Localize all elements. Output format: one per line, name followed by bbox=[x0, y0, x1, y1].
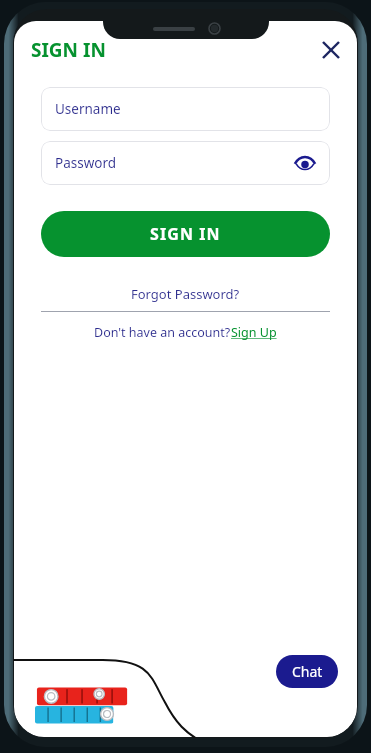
button[interactable]: Forgot Password? bbox=[41, 285, 330, 303]
staticText: Chat bbox=[292, 662, 323, 681]
button[interactable]: Close bbox=[314, 33, 348, 67]
staticText: Don't have an account? bbox=[94, 324, 231, 341]
staticText: Forgot Password? bbox=[131, 285, 240, 303]
button[interactable]: Username bbox=[41, 87, 330, 131]
button[interactable]: Chat bbox=[276, 655, 338, 688]
button[interactable]: Sign Up bbox=[231, 324, 277, 341]
staticText: Password bbox=[55, 154, 117, 172]
button[interactable]: SIGN IN bbox=[41, 211, 330, 257]
staticText: Username bbox=[55, 100, 121, 118]
button[interactable]: Password bbox=[41, 141, 330, 185]
staticText: SIGN IN bbox=[150, 223, 221, 245]
button[interactable]: Show password bbox=[290, 148, 320, 178]
staticText: SIGN IN bbox=[31, 37, 106, 63]
staticText: Sign Up bbox=[231, 324, 277, 341]
